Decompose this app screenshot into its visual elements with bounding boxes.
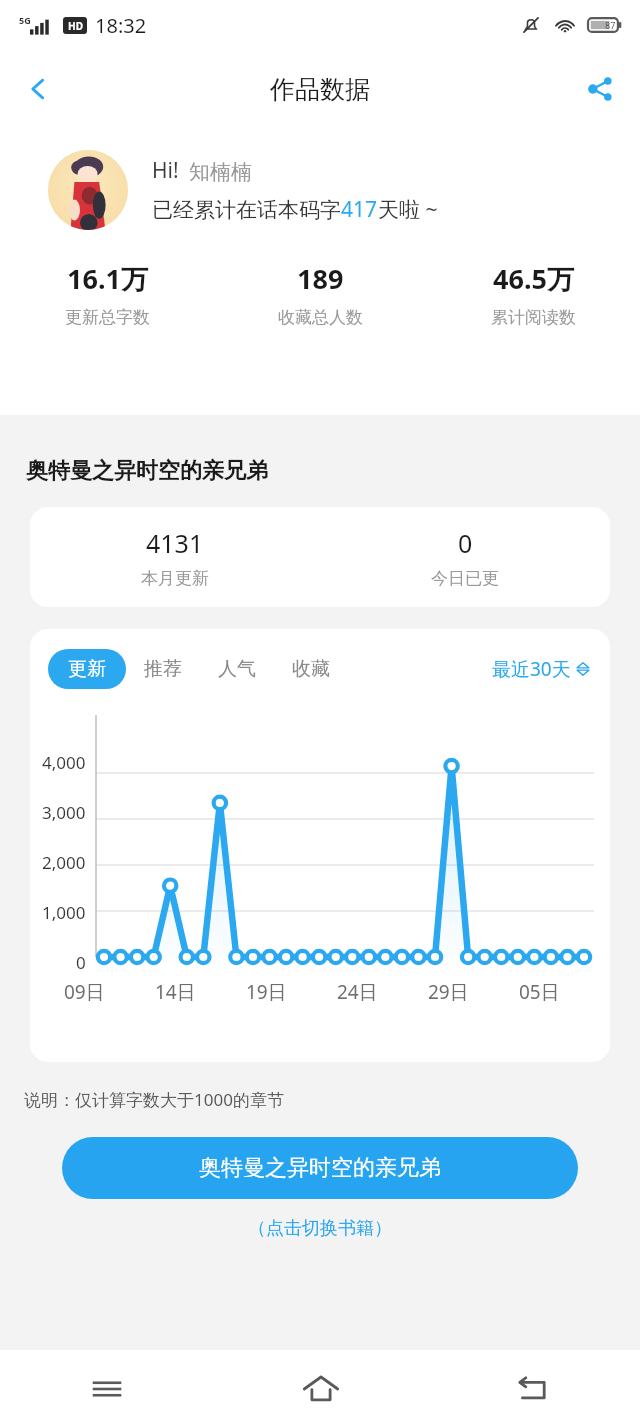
staticText: 19日	[246, 979, 287, 1005]
button[interactable]: Hi!	[48, 150, 640, 230]
staticText: 1,000	[42, 901, 86, 924]
staticText: 本月更新	[141, 568, 209, 589]
button[interactable]: Back	[10, 61, 66, 117]
staticText: 16.1万	[67, 260, 148, 297]
button[interactable]: 推荐	[126, 649, 200, 689]
button[interactable]: Recent apps	[0, 1350, 214, 1428]
button[interactable]: Share	[572, 61, 628, 117]
staticText: 189	[297, 260, 344, 297]
staticText: 天啦 ~	[378, 195, 438, 224]
staticText: 0	[458, 526, 473, 560]
button[interactable]: Back	[427, 1350, 640, 1428]
staticText: HD	[68, 19, 83, 33]
staticText: 奥特曼之异时空的亲兄弟	[26, 457, 268, 485]
button[interactable]: 收藏	[274, 649, 348, 689]
button[interactable]: 16.1万	[0, 260, 214, 328]
staticText: 知楠楠	[189, 159, 252, 185]
staticText: 5G	[19, 14, 31, 26]
staticText: 更新总字数	[65, 307, 150, 328]
button[interactable]: 奥特曼之异时空的亲兄弟	[62, 1137, 578, 1199]
staticText: 已经累计在话本码字	[152, 197, 341, 223]
staticText: 0	[76, 951, 86, 974]
staticText: 4,000	[42, 751, 86, 774]
staticText: 说明：仅计算字数大于1000的章节	[24, 1088, 284, 1111]
staticText: 14日	[155, 979, 196, 1005]
staticText: 收藏总人数	[278, 307, 363, 328]
staticText: 29日	[428, 979, 469, 1005]
staticText: 05日	[519, 979, 560, 1005]
staticText: 24日	[337, 979, 378, 1005]
button[interactable]: 更新	[48, 649, 126, 689]
staticText: Hi!	[152, 156, 179, 185]
staticText: （点击切换书籍）	[248, 1217, 392, 1240]
staticText: 最近30天	[492, 656, 571, 682]
staticText: 09日	[64, 979, 105, 1005]
button[interactable]: 人气	[200, 649, 274, 689]
staticText: 累计阅读数	[491, 307, 576, 328]
staticText: 3,000	[42, 801, 86, 824]
staticText: 2,000	[42, 851, 86, 874]
staticText: 收藏	[292, 657, 330, 681]
staticText: 417	[341, 195, 378, 224]
staticText: 奥特曼之异时空的亲兄弟	[199, 1154, 441, 1182]
staticText: 人气	[218, 657, 256, 681]
staticText: 作品数据	[270, 74, 370, 105]
staticText: 46.5万	[493, 260, 574, 297]
button[interactable]: 4131	[30, 507, 610, 607]
staticText: 推荐	[144, 657, 182, 681]
staticText: 4131	[146, 526, 204, 560]
button[interactable]: 46.5万	[427, 260, 640, 328]
button[interactable]: 最近30天	[488, 652, 594, 686]
staticText: 18:32	[95, 12, 147, 39]
button[interactable]: Home	[214, 1350, 427, 1428]
button[interactable]: （点击切换书籍）	[0, 1211, 640, 1246]
staticText: 更新	[68, 657, 106, 681]
button[interactable]: 189	[214, 260, 427, 328]
staticText: 今日已更	[431, 568, 499, 589]
staticText: 87	[605, 19, 616, 31]
